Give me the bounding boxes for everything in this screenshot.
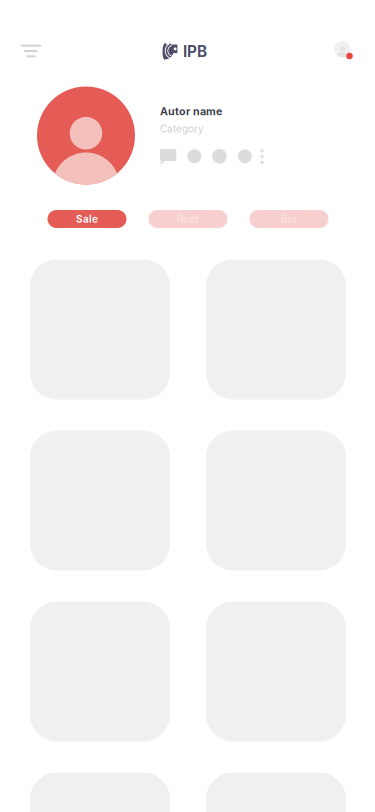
staticText: Bio: [281, 213, 297, 225]
staticText: Sale: [76, 213, 98, 225]
button[interactable]: Listing: [30, 772, 170, 812]
button[interactable]: Listing: [206, 772, 346, 812]
button[interactable]: Profile: [326, 27, 366, 71]
staticText: IPB: [183, 42, 207, 61]
staticText: Category: [160, 123, 204, 135]
button[interactable]: More: [252, 149, 265, 164]
staticText: Rent: [177, 213, 199, 225]
button[interactable]: Sale: [47, 210, 126, 228]
staticText: Autor name: [160, 105, 222, 118]
button[interactable]: Share: [201, 149, 227, 164]
button[interactable]: Bio: [249, 210, 328, 228]
button[interactable]: Save: [227, 149, 252, 163]
button[interactable]: Menu: [9, 27, 53, 71]
button[interactable]: Rent: [148, 210, 227, 228]
button[interactable]: Comments: [160, 149, 176, 164]
button[interactable]: Like: [176, 149, 201, 163]
